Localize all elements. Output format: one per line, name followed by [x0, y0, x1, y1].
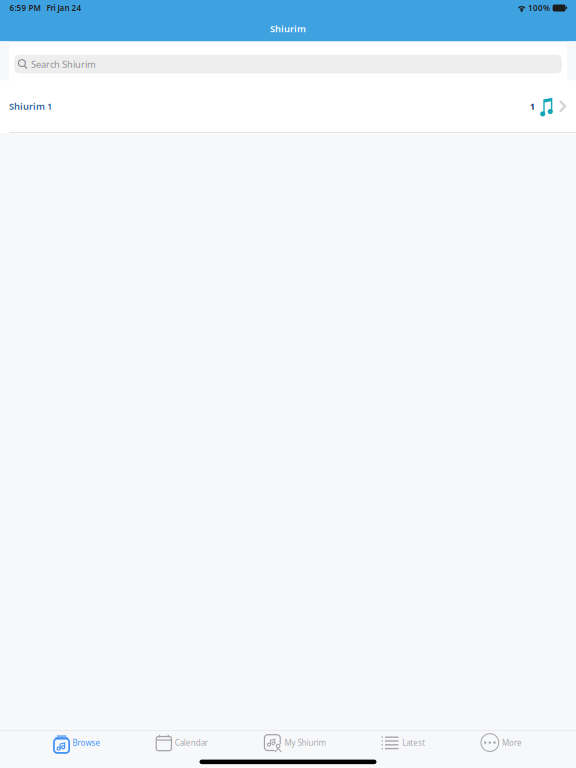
button[interactable]: More [481, 731, 522, 755]
staticText: Shiurim [270, 23, 306, 35]
button[interactable]: Browse [54, 731, 100, 755]
staticText: Calendar [175, 737, 208, 748]
staticText: My Shiurim [284, 737, 325, 748]
staticText: Latest [402, 737, 425, 748]
staticText: 100% [528, 3, 550, 13]
button[interactable]: Search Shiurim [14, 55, 562, 73]
staticText: More [502, 737, 522, 748]
button[interactable]: Calendar [156, 731, 208, 755]
button[interactable]: Latest [381, 731, 425, 755]
button[interactable]: My Shiurim [263, 731, 325, 755]
staticText: 6:59 PM [9, 3, 40, 13]
staticText: Fri Jan 24 [46, 3, 81, 13]
staticText: Search Shiurim [31, 58, 96, 70]
staticText: Browse [72, 737, 100, 748]
staticText: Shiurim 1 [9, 100, 52, 112]
button[interactable]: Shiurim 1 [0, 80, 576, 132]
staticText: 1 [530, 100, 535, 112]
